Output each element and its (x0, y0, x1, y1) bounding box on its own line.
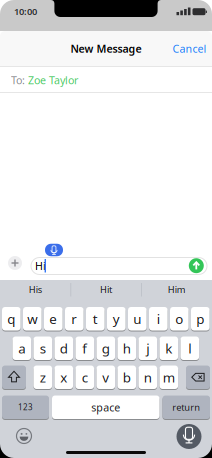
staticText: space (91, 400, 120, 414)
staticText: z (40, 368, 46, 386)
staticText: g (102, 339, 110, 357)
staticText: e (49, 310, 57, 328)
staticText: Cancel (172, 41, 206, 56)
staticText: o (175, 310, 183, 328)
staticText: return (172, 401, 200, 413)
staticText: l (188, 339, 191, 357)
staticText: w (27, 310, 37, 328)
staticText: u (133, 310, 141, 328)
staticText: r (71, 310, 77, 328)
staticText: s (40, 339, 46, 357)
staticText: b (123, 368, 131, 386)
staticText: n (144, 368, 152, 386)
staticText: His (29, 283, 42, 296)
staticText: j (146, 339, 149, 357)
staticText: d (60, 339, 68, 357)
staticText: y (113, 310, 120, 328)
staticText: Zoe Taylor (28, 73, 78, 87)
staticText: 10:00 (14, 5, 37, 18)
staticText: f (82, 339, 87, 357)
staticText: To: (11, 73, 25, 87)
staticText: x (60, 368, 67, 386)
staticText: i (157, 310, 160, 328)
staticText: Him (168, 283, 186, 296)
staticText: Hi (35, 259, 46, 273)
staticText: a (18, 339, 25, 357)
staticText: t (93, 310, 98, 328)
staticText: h (123, 339, 131, 357)
staticText: m (163, 368, 175, 386)
staticText: k (165, 339, 172, 357)
staticText: c (82, 368, 88, 386)
staticText: Hit (100, 283, 112, 296)
staticText: 123 (18, 402, 33, 412)
staticText: p (196, 310, 204, 328)
staticText: q (7, 310, 15, 328)
staticText: v (102, 368, 109, 386)
staticText: New Message (70, 41, 141, 56)
